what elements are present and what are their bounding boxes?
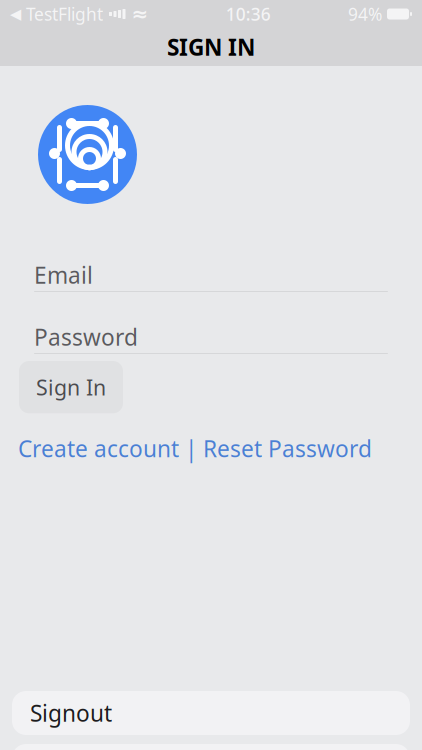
staticText: Signout <box>30 698 112 728</box>
staticText: Password <box>34 322 138 352</box>
staticText: 94% <box>348 2 382 25</box>
staticText: Create account <box>18 433 179 463</box>
staticText: Sign In <box>36 373 106 401</box>
button[interactable]: Create account <box>18 433 179 463</box>
button[interactable]: Sign In <box>19 361 123 413</box>
staticText: Email <box>34 260 93 290</box>
staticText: 10:36 <box>226 2 271 25</box>
staticText: ◀ <box>10 6 21 22</box>
staticText: SIGN IN <box>167 32 255 62</box>
staticText: ≈ <box>131 3 148 25</box>
staticText: TestFlight <box>21 2 103 25</box>
button[interactable]: Signout <box>12 691 410 735</box>
staticText: Reset Password <box>203 433 372 463</box>
staticText: | <box>179 433 203 463</box>
button[interactable]: Reset Password <box>203 433 372 463</box>
